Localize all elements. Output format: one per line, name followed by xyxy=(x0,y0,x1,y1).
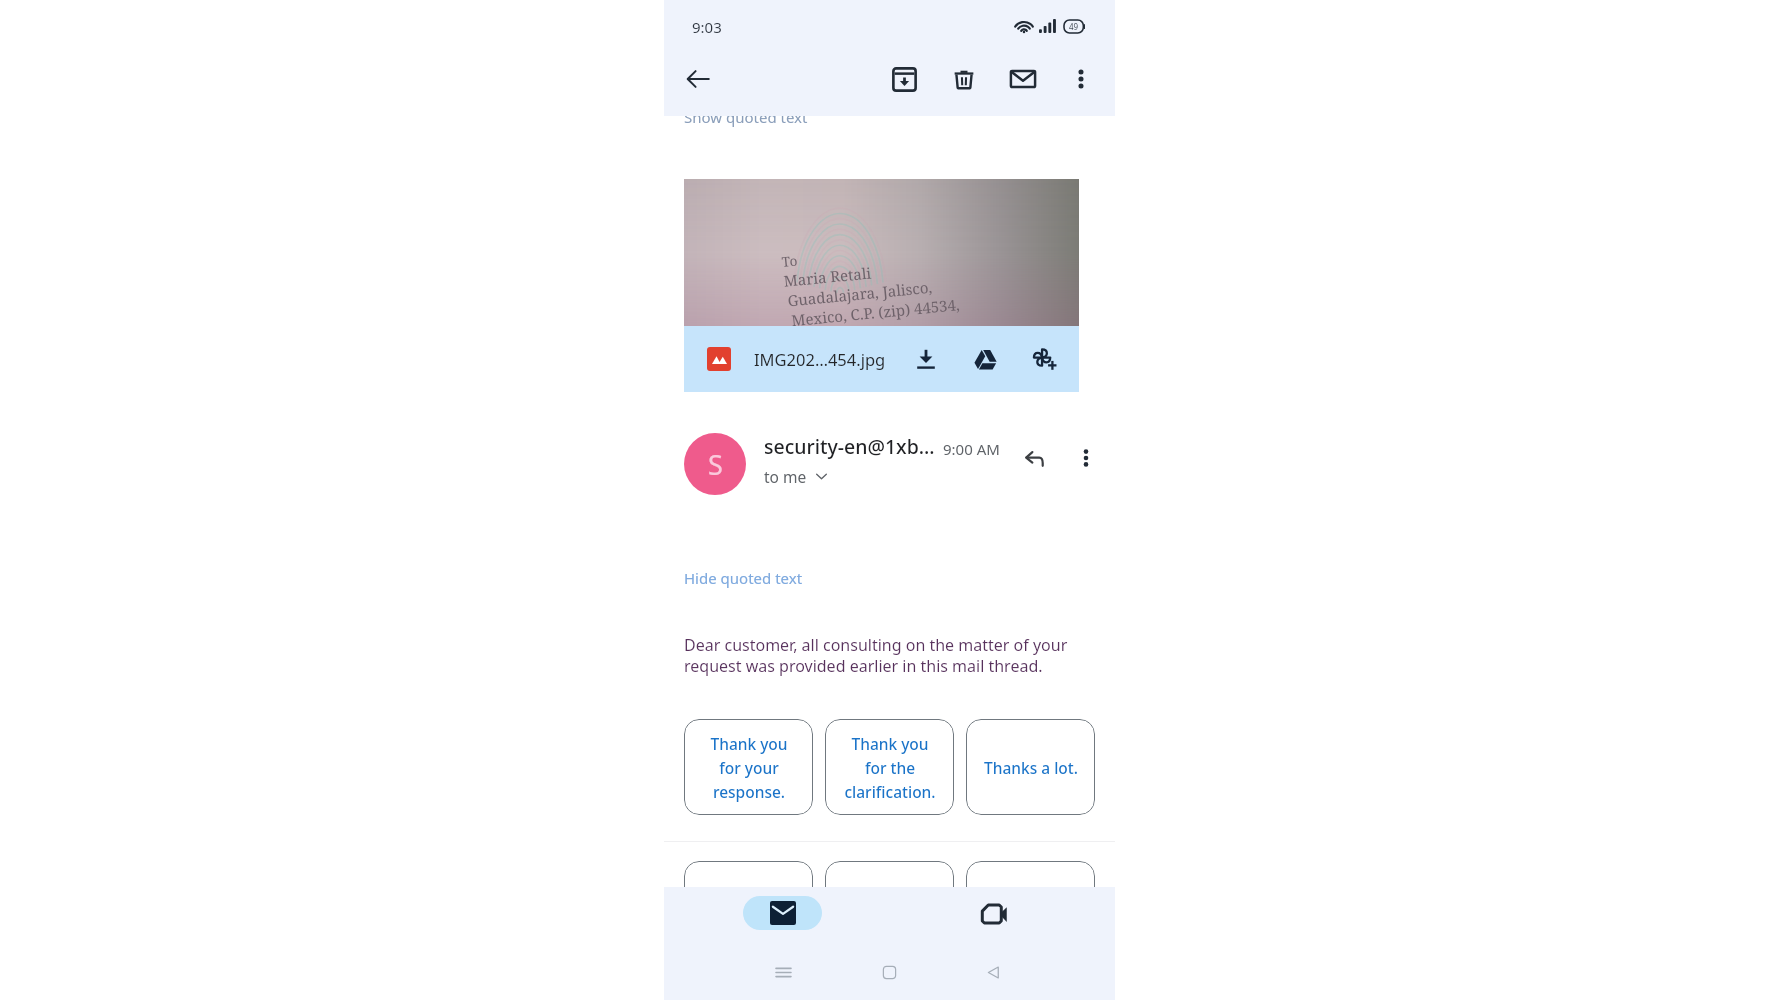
button[interactable]: Show quoted text xyxy=(684,107,808,127)
button[interactable]: Hide quoted text xyxy=(684,568,803,588)
staticText: security-en@1xb… xyxy=(764,433,935,460)
staticText: Thanks a lot. xyxy=(984,757,1078,778)
staticText: IMG202…454.jpg xyxy=(754,348,886,370)
button[interactable]: Home xyxy=(871,954,907,990)
button[interactable]: Mail xyxy=(743,896,822,930)
staticText: to me xyxy=(764,466,807,487)
button[interactable]: Sender avatar xyxy=(684,433,746,495)
button[interactable]: More options xyxy=(1062,60,1100,98)
staticText: Thank you for your response. xyxy=(710,733,788,802)
button[interactable]: Save to Photos xyxy=(1028,343,1060,375)
staticText: Thank you for the clarification. xyxy=(844,733,936,802)
staticText: S xyxy=(708,446,723,483)
staticText: 49 xyxy=(1069,21,1079,32)
button[interactable]: More options xyxy=(1068,440,1104,476)
button[interactable]: Meet xyxy=(971,896,1017,932)
button[interactable]: Mark as unread xyxy=(1004,60,1042,98)
button[interactable] xyxy=(684,861,813,957)
button[interactable]: Back xyxy=(975,954,1011,990)
button[interactable] xyxy=(966,861,1095,957)
staticText: 9:03 xyxy=(692,17,722,37)
button[interactable]: Delete xyxy=(945,60,983,98)
button[interactable]: Recents xyxy=(765,954,801,990)
button[interactable]: Back xyxy=(679,60,717,98)
button[interactable] xyxy=(825,861,954,957)
staticText: Mexico, C.P. (zip) 44534, xyxy=(790,294,961,326)
staticText: 9:00 AM xyxy=(943,439,1000,459)
button[interactable]: Open attachment preview xyxy=(684,179,1079,326)
button[interactable]: IMG202…454.jpg xyxy=(684,326,1079,392)
button[interactable]: Thank you for the clarification. xyxy=(825,719,954,815)
button[interactable]: Thanks a lot. xyxy=(966,719,1095,815)
staticText: To xyxy=(781,251,799,271)
button[interactable]: Save to Drive xyxy=(969,343,1001,375)
button[interactable]: Thank you for your response. xyxy=(684,719,813,815)
button[interactable]: to me xyxy=(764,466,827,487)
button[interactable]: Archive xyxy=(885,60,923,98)
staticText: Guadalajara, Jalisco, xyxy=(787,277,934,310)
staticText: Maria Retali xyxy=(783,262,872,291)
staticText: Dear customer, all consulting on the mat… xyxy=(684,634,1076,677)
button[interactable]: Download xyxy=(910,343,942,375)
button[interactable]: Reply xyxy=(1018,440,1054,476)
